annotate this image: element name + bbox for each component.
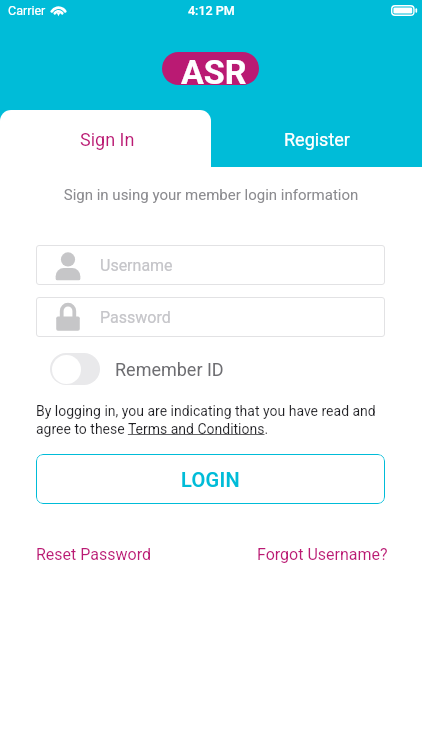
- staticText: Sign in using your member login informat…: [0, 186, 422, 204]
- button[interactable]: Username: [36, 245, 385, 285]
- staticText: 4:12 PM: [188, 3, 235, 18]
- button[interactable]: Remember ID: [50, 353, 224, 385]
- button[interactable]: Reset Password: [36, 545, 151, 564]
- staticText: ASR: [181, 52, 247, 85]
- staticText: Carrier: [8, 3, 46, 18]
- button[interactable]: Forgot Username?: [257, 545, 388, 564]
- staticText: Forgot Username?: [257, 545, 388, 564]
- button[interactable]: Password: [36, 297, 385, 337]
- staticText: Username: [100, 256, 173, 275]
- staticText: Reset Password: [36, 545, 151, 564]
- staticText: Register: [284, 129, 350, 150]
- button[interactable]: Register: [211, 110, 422, 167]
- staticText: LOGIN: [181, 468, 241, 491]
- staticText: Remember ID: [115, 359, 224, 380]
- button[interactable]: Sign In: [0, 110, 211, 167]
- staticText: By logging in, you are indicating that y…: [36, 403, 386, 437]
- staticText: Sign In: [80, 129, 135, 150]
- button[interactable]: LOGIN: [36, 454, 385, 504]
- staticText: Password: [100, 308, 171, 327]
